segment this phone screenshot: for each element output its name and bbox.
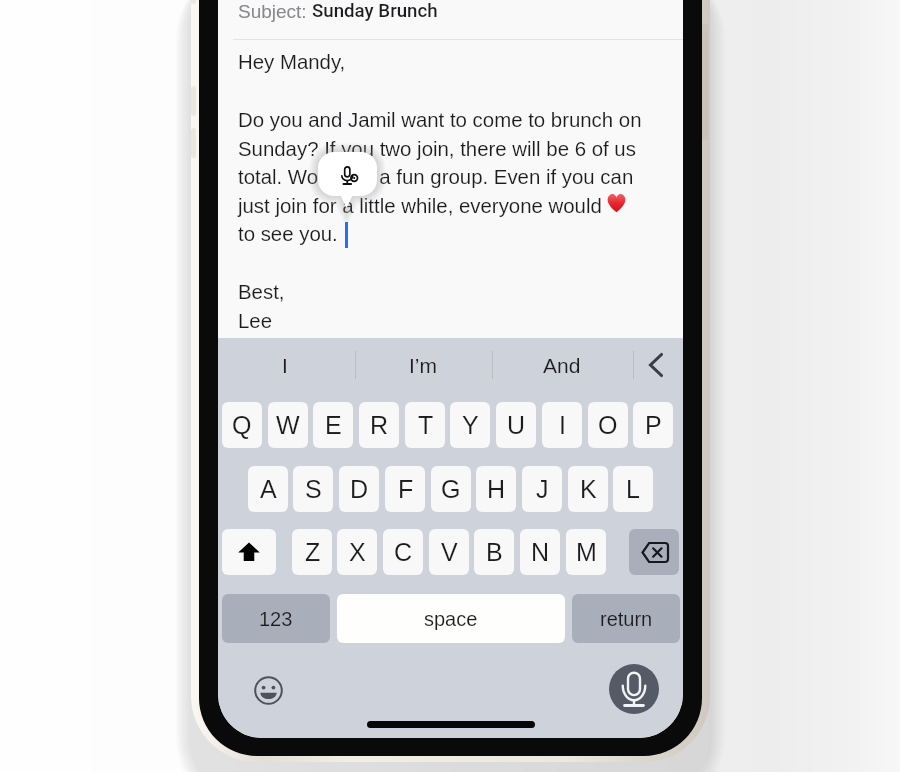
staticText: Sunday Brunch <box>312 0 438 22</box>
staticText: Sunday? If you two join, there will be 6… <box>238 138 636 161</box>
button[interactable]: K <box>568 466 608 512</box>
staticText: Hey Mandy, <box>238 51 346 74</box>
staticText: Y <box>462 411 479 439</box>
staticText: J <box>536 475 549 503</box>
button[interactable]: And <box>512 343 612 387</box>
staticText: X <box>349 538 366 566</box>
staticText: U <box>507 411 525 439</box>
staticText: B <box>486 538 503 566</box>
button[interactable]: R <box>359 402 399 448</box>
staticText: Z <box>305 538 320 566</box>
button[interactable]: Shift <box>222 529 276 575</box>
staticText: E <box>325 411 342 439</box>
staticText: Best, <box>238 281 285 304</box>
button[interactable]: Y <box>450 402 490 448</box>
staticText: I’m <box>409 354 437 377</box>
staticText: C <box>394 538 412 566</box>
staticText: D <box>350 475 368 503</box>
button[interactable]: H <box>476 466 516 512</box>
staticText: M <box>576 538 597 566</box>
staticText: space <box>424 608 478 630</box>
staticText: K <box>580 475 597 503</box>
button[interactable]: 123 <box>222 594 330 643</box>
staticText: P <box>645 411 662 439</box>
staticText: W <box>276 411 300 439</box>
button[interactable]: M <box>566 529 606 575</box>
button[interactable]: L <box>613 466 653 512</box>
staticText: S <box>305 475 322 503</box>
staticText: to see you. <box>238 223 338 246</box>
staticText: just join for a little while, everyone w… <box>238 195 602 218</box>
button[interactable]: J <box>522 466 562 512</box>
button[interactable]: F <box>385 466 425 512</box>
button[interactable]: Backspace <box>629 529 679 575</box>
staticText: Lee <box>238 310 273 333</box>
button[interactable]: Dictation <box>318 152 377 207</box>
button[interactable]: Collapse keyboard <box>634 343 678 387</box>
button[interactable]: N <box>520 529 560 575</box>
staticText: A <box>260 475 277 503</box>
staticText: I <box>282 354 288 377</box>
button[interactable]: V <box>429 529 469 575</box>
button[interactable]: X <box>337 529 377 575</box>
staticText: V <box>441 538 458 566</box>
staticText: N <box>531 538 549 566</box>
button[interactable]: O <box>588 402 628 448</box>
button[interactable]: C <box>383 529 423 575</box>
staticText: G <box>441 475 461 503</box>
staticText: O <box>598 411 618 439</box>
button[interactable]: P <box>633 402 673 448</box>
staticText: And <box>543 354 581 377</box>
button[interactable]: D <box>339 466 379 512</box>
button[interactable]: W <box>268 402 308 448</box>
button[interactable]: I’m <box>373 343 473 387</box>
button[interactable]: U <box>496 402 536 448</box>
button[interactable]: B <box>474 529 514 575</box>
staticText: T <box>418 411 433 439</box>
staticText: R <box>370 411 388 439</box>
button[interactable]: Z <box>292 529 332 575</box>
button[interactable]: T <box>405 402 445 448</box>
button[interactable]: I <box>542 402 582 448</box>
button[interactable]: Dictation <box>609 664 659 714</box>
staticText: I <box>559 411 566 439</box>
staticText: Subject: <box>238 1 312 22</box>
button[interactable]: S <box>293 466 333 512</box>
button[interactable]: I <box>235 343 335 387</box>
button[interactable]: G <box>431 466 471 512</box>
staticText: return <box>600 608 653 630</box>
staticText: total. Would be a fun group. Even if you… <box>238 166 634 189</box>
staticText: Do you and Jamil want to come to brunch … <box>238 109 642 132</box>
staticText: Q <box>232 411 252 439</box>
staticText: F <box>398 475 413 503</box>
staticText: H <box>487 475 505 503</box>
staticText: 123 <box>259 608 293 630</box>
button[interactable]: Q <box>222 402 262 448</box>
button[interactable]: E <box>313 402 353 448</box>
button[interactable]: Emoji <box>254 676 283 705</box>
button[interactable]: A <box>248 466 288 512</box>
button[interactable]: space <box>337 594 565 643</box>
button[interactable]: return <box>572 594 680 643</box>
staticText: L <box>626 475 640 503</box>
